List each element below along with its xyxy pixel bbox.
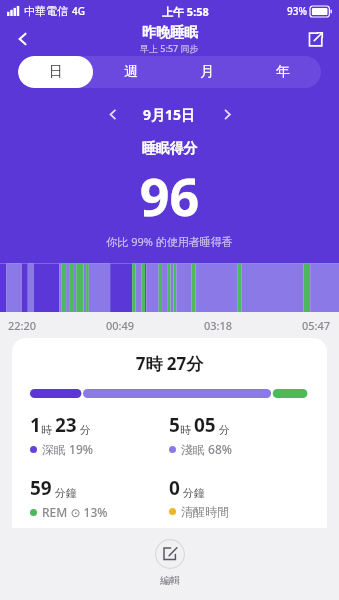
staticText: 早上 5:57 同步 [140, 42, 199, 54]
button[interactable]: 月 [169, 56, 245, 88]
staticText: 00:49 [106, 318, 135, 333]
staticText: 分鐘 [52, 485, 77, 500]
staticText: 1 [30, 412, 41, 438]
staticText: 月 [200, 63, 214, 81]
staticText: 昨晚睡眠 [142, 24, 198, 42]
staticText: 05:47 [302, 318, 331, 333]
staticText: 7時 27分 [30, 352, 309, 375]
staticText: 時 [180, 422, 194, 437]
staticText: 9月15日 [143, 105, 196, 124]
staticText: 22:20 [8, 318, 37, 333]
staticText: 4G [72, 4, 85, 18]
staticText: 23 [55, 412, 77, 438]
staticText: 編輯 [160, 574, 180, 587]
staticText: 週 [124, 63, 138, 81]
staticText: 清醒時間 [181, 504, 229, 519]
staticText: 0 [169, 475, 180, 501]
button[interactable]: 編輯 [0, 528, 339, 600]
staticText: REM ⊙ 13% [42, 504, 108, 520]
staticText: 上午 5:58 [162, 4, 209, 19]
button[interactable]: 週 [93, 56, 169, 88]
button[interactable]: 後一天 [214, 101, 240, 127]
staticText: 分 [216, 422, 230, 437]
button[interactable]: 分享 [299, 23, 331, 55]
button[interactable]: 日 [18, 56, 93, 88]
staticText: 淺眠 68% [181, 441, 233, 457]
staticText: 分 [77, 422, 91, 437]
button[interactable]: 年 [245, 56, 321, 88]
staticText: 59 [30, 475, 52, 501]
button[interactable]: 返回 [6, 22, 40, 56]
staticText: 年 [276, 63, 290, 81]
staticText: 05 [194, 412, 216, 438]
staticText: 中華電信 [24, 4, 68, 18]
staticText: 03:18 [204, 318, 233, 333]
button[interactable]: 7時 27分 [12, 338, 327, 528]
button[interactable]: 前一天 [99, 101, 125, 127]
staticText: 睡眠得分 [0, 140, 339, 158]
staticText: 日 [49, 63, 63, 81]
staticText: 時 [41, 422, 55, 437]
staticText: 93% [287, 4, 307, 18]
staticText: 你比 99% 的使用者睡得香 [0, 234, 339, 249]
staticText: 分鐘 [180, 485, 205, 500]
staticText: 96 [0, 160, 339, 231]
staticText: 5 [169, 412, 180, 438]
staticText: 深眠 19% [42, 441, 94, 457]
